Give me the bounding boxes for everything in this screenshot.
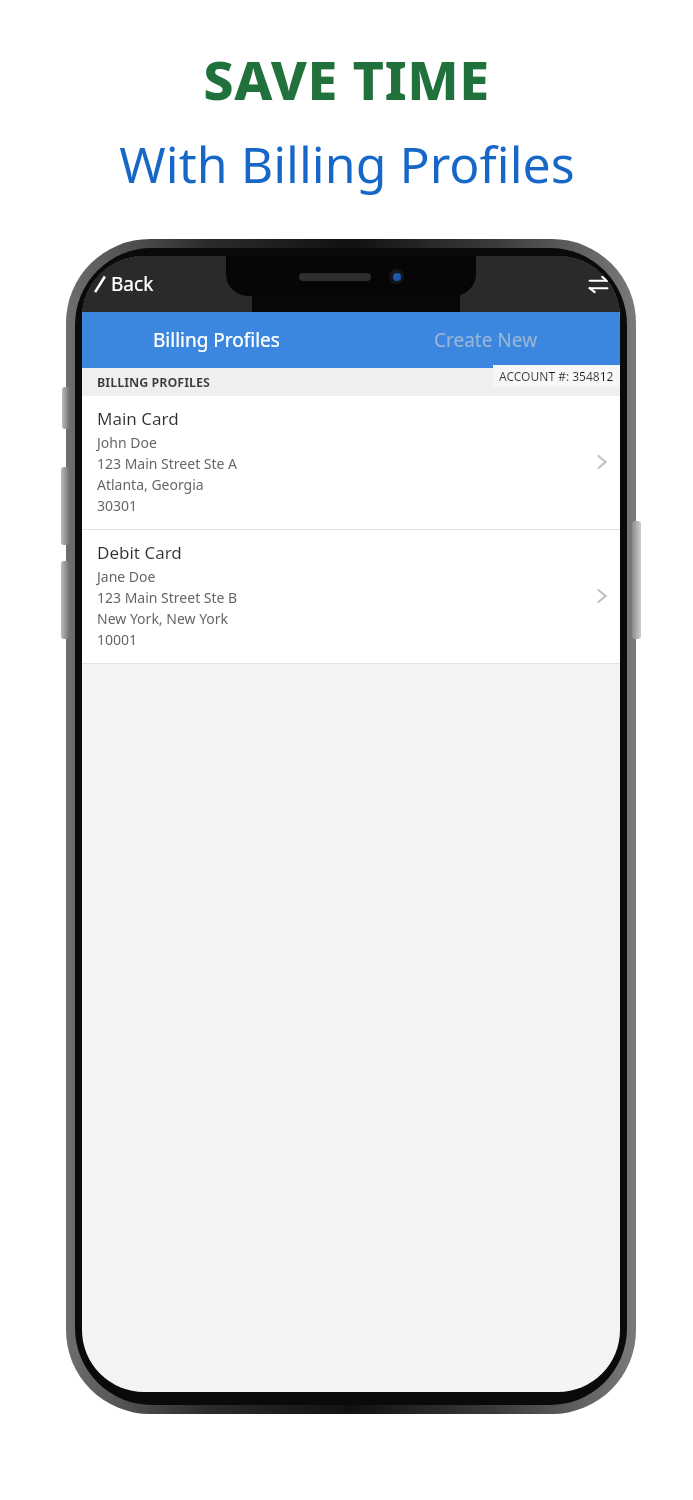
staticText: SAVE TIME bbox=[203, 42, 490, 116]
button[interactable]: Switch account bbox=[576, 262, 620, 306]
staticText: 30301 bbox=[97, 496, 138, 515]
button[interactable]: Back bbox=[82, 262, 168, 306]
staticText: New York, New York bbox=[97, 609, 229, 628]
staticText: 123 Main Street Ste A bbox=[97, 454, 238, 473]
staticText: With Billing Profiles bbox=[119, 130, 575, 198]
staticText: Jane Doe bbox=[97, 567, 156, 586]
staticText: John Doe bbox=[97, 433, 157, 452]
staticText: Create New bbox=[434, 327, 538, 353]
staticText: Back bbox=[111, 271, 154, 297]
staticText: Atlanta, Georgia bbox=[97, 475, 204, 494]
staticText: ACCOUNT #: 354812 bbox=[499, 368, 614, 384]
button[interactable]: Create New bbox=[351, 312, 620, 368]
staticText: Debit Card bbox=[97, 541, 182, 564]
staticText: BILLING PROFILES bbox=[97, 374, 210, 391]
button[interactable]: Debit Card bbox=[82, 530, 620, 663]
staticText: Billing Profiles bbox=[153, 327, 280, 353]
staticText: 123 Main Street Ste B bbox=[97, 588, 238, 607]
button[interactable]: Billing Profiles bbox=[82, 312, 351, 368]
button[interactable]: Main Card bbox=[82, 396, 620, 529]
staticText: Main Card bbox=[97, 407, 179, 430]
staticText: 10001 bbox=[97, 630, 138, 649]
